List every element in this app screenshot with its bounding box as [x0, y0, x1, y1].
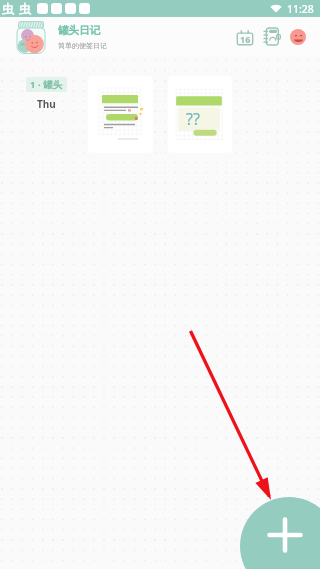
staticText: 简单的便签日记 [58, 41, 107, 50]
staticText: ?? [186, 108, 200, 130]
staticText: 虫 [2, 1, 14, 16]
staticText: Thu [37, 97, 56, 111]
staticText: 虫 [19, 1, 31, 16]
button[interactable]: ?? [168, 76, 232, 153]
staticText: 罐头日记 [58, 24, 100, 37]
button[interactable] [88, 76, 153, 153]
staticText: 1 · 罐头 [30, 78, 63, 91]
staticText: 16 [240, 33, 251, 45]
button[interactable]: Add new note [240, 497, 320, 569]
button[interactable]: Profile [290, 29, 306, 45]
staticText: 11:28 [287, 2, 314, 16]
button[interactable]: Calendar [237, 29, 253, 45]
button[interactable]: Notes [263, 28, 280, 45]
